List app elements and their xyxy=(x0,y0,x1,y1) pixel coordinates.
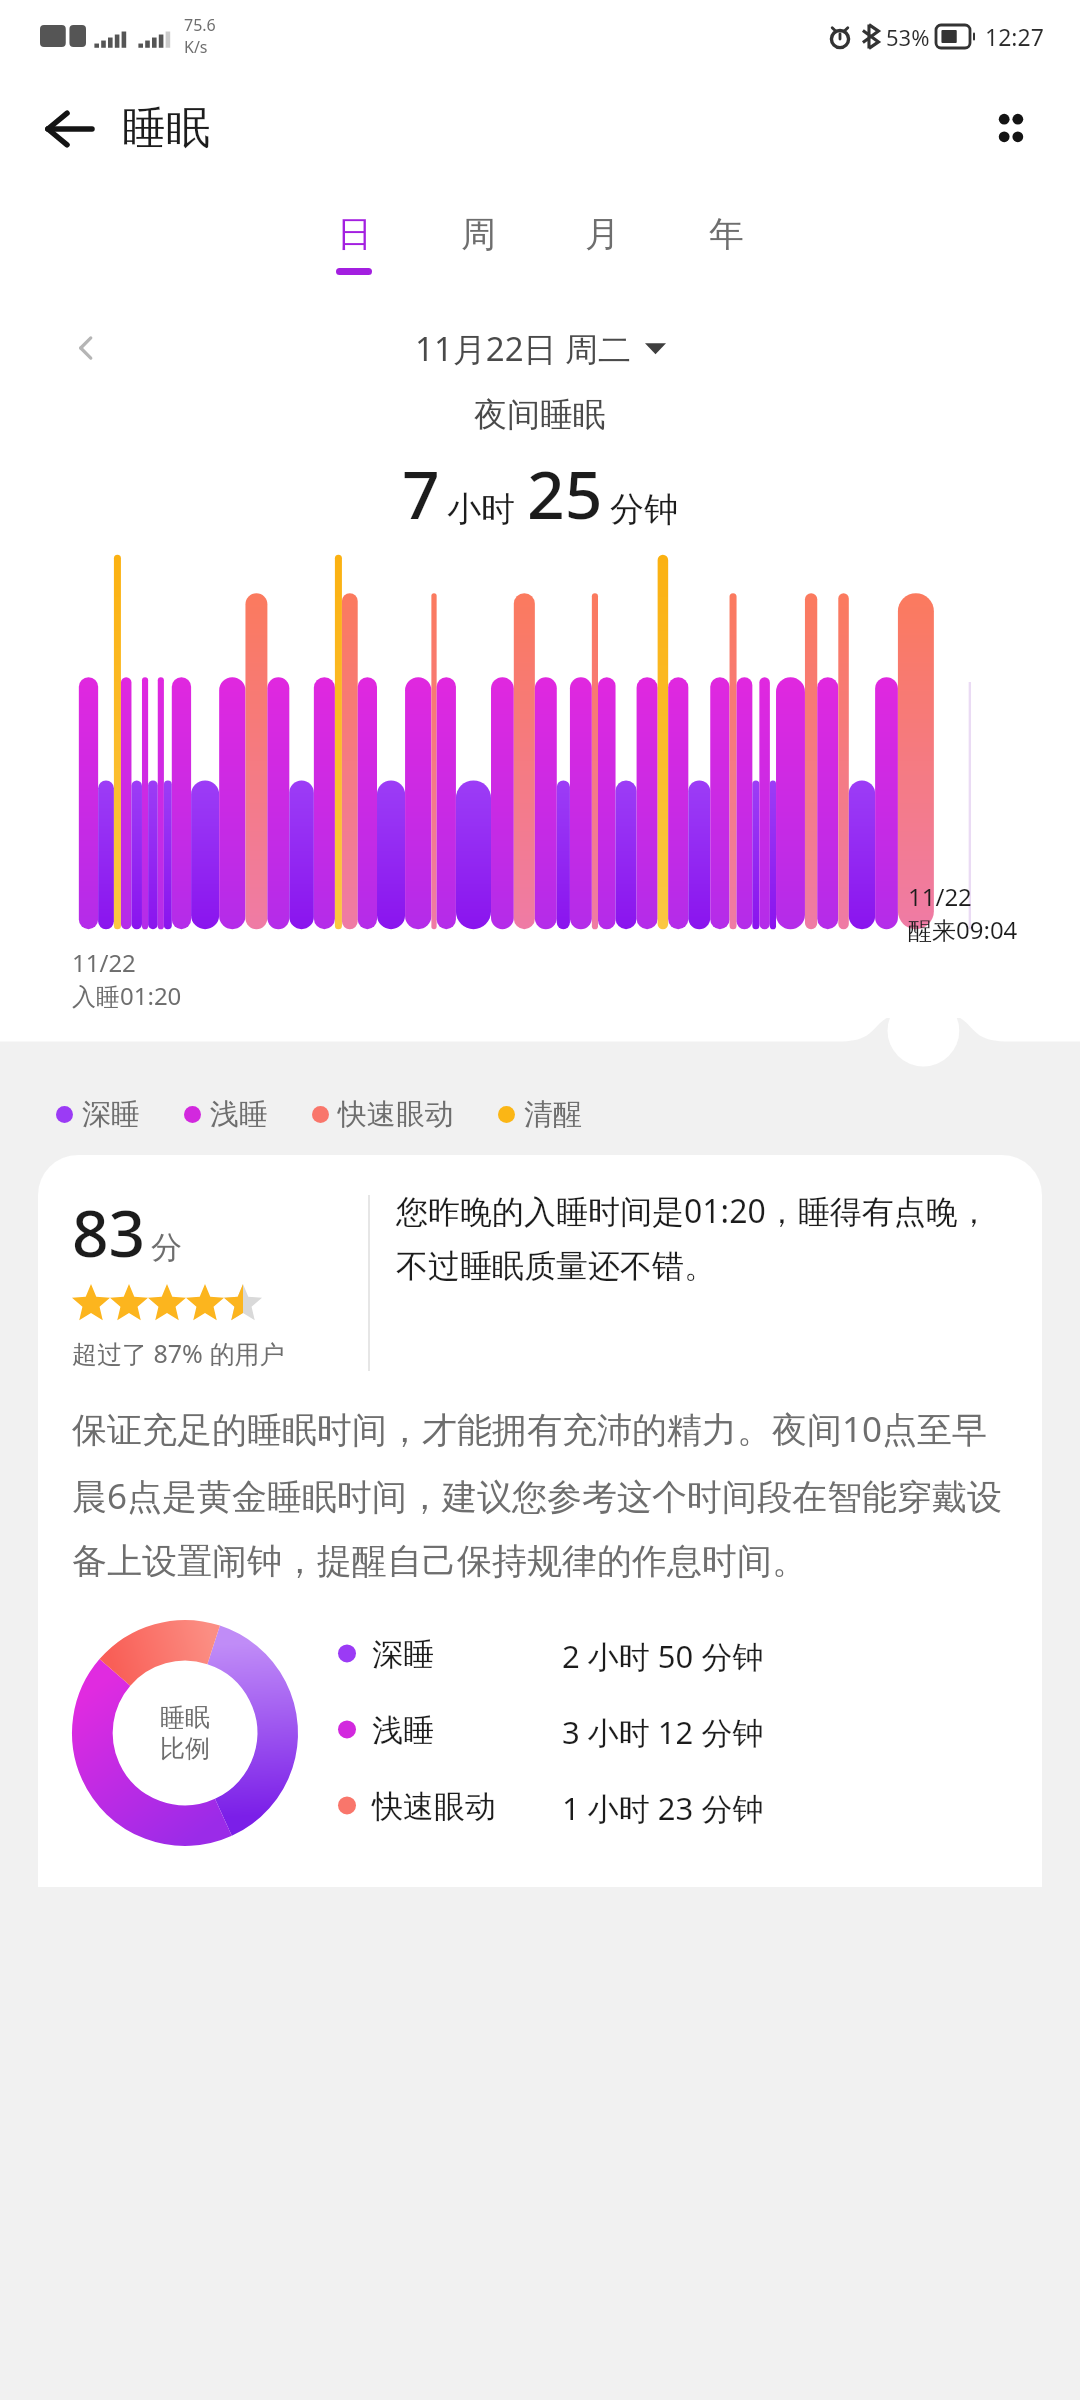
staticText: 周 xyxy=(461,212,496,256)
button[interactable]: 快速眼动 xyxy=(312,1096,454,1133)
staticText: 1 小时 23 分钟 xyxy=(562,1787,1008,1829)
button[interactable]: More options xyxy=(972,89,1050,167)
button[interactable]: 周 xyxy=(416,184,540,302)
staticText: 比例 xyxy=(160,1733,210,1764)
staticText: 7 xyxy=(402,448,440,538)
staticText: 快速眼动 xyxy=(372,1787,562,1826)
staticText: 11/22 xyxy=(72,946,136,979)
staticText: 53% xyxy=(886,22,930,52)
staticText: 75.6 xyxy=(184,14,216,36)
staticText: 您昨晚的入睡时间是01:20，睡得有点晚，不过睡眠质量还不错。 xyxy=(396,1189,1008,1287)
staticText: 11月22日 周二 xyxy=(415,326,632,371)
button[interactable]: 浅睡 xyxy=(184,1096,268,1133)
button[interactable]: 年 xyxy=(664,184,788,302)
staticText: 3 小时 12 分钟 xyxy=(562,1711,1008,1753)
staticText: 日 xyxy=(337,212,372,256)
staticText: 25 xyxy=(527,448,603,538)
button[interactable]: 日 xyxy=(292,184,416,302)
staticText: 醒来09:04 xyxy=(908,913,1018,946)
staticText: 夜间睡眠 xyxy=(0,394,1080,436)
staticText: 分 xyxy=(151,1228,182,1267)
staticText: 深睡 xyxy=(82,1096,140,1133)
staticText: 12:27 xyxy=(985,21,1044,52)
staticText: 睡眠 xyxy=(122,101,210,156)
staticText: 月 xyxy=(585,212,620,256)
button[interactable]: 83 xyxy=(38,1155,1042,1887)
staticText: 11/22 xyxy=(908,880,972,913)
staticText: 睡眠 xyxy=(160,1702,210,1733)
staticText: 入睡01:20 xyxy=(72,979,182,1012)
button[interactable]: Back xyxy=(30,89,108,167)
staticText: 年 xyxy=(709,212,744,256)
button[interactable]: 快速眼动 xyxy=(338,1787,1008,1831)
staticText: 分钟 xyxy=(610,488,678,531)
button[interactable]: 11月22日 周二 xyxy=(415,326,666,371)
staticText: 浅睡 xyxy=(210,1096,268,1133)
staticText: 浅睡 xyxy=(372,1711,562,1750)
staticText: 快速眼动 xyxy=(338,1096,454,1133)
staticText: 超过了 87% 的用户 xyxy=(72,1336,285,1370)
button[interactable]: Previous day xyxy=(56,318,116,378)
staticText: 深睡 xyxy=(372,1635,562,1674)
staticText: 保证充足的睡眠时间，才能拥有充沛的精力。夜间10点至早晨6点是黄金睡眠时间，建议… xyxy=(72,1405,1008,1583)
button[interactable]: 清醒 xyxy=(498,1096,582,1133)
staticText: K/s xyxy=(184,36,208,58)
staticText: 小时 xyxy=(447,488,515,531)
button[interactable]: 月 xyxy=(540,184,664,302)
staticText: 清醒 xyxy=(524,1096,582,1133)
button[interactable]: 深睡 xyxy=(338,1635,1008,1679)
staticText: 2 小时 50 分钟 xyxy=(562,1635,1008,1677)
staticText: 83 xyxy=(72,1189,146,1276)
button[interactable]: 深睡 xyxy=(56,1096,140,1133)
button[interactable]: 浅睡 xyxy=(338,1711,1008,1755)
